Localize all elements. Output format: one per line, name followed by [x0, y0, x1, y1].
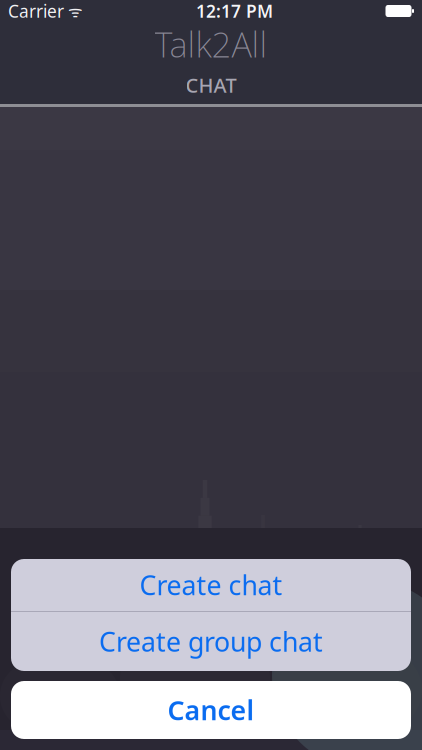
button[interactable]: Contacts [0, 705, 141, 728]
staticText: Create group chat [99, 624, 323, 659]
button[interactable]: Messages [141, 705, 281, 728]
staticText: Cancel [167, 692, 254, 728]
button[interactable]: Cancel [11, 681, 411, 739]
staticText: Create chat [139, 567, 282, 603]
staticText: Carrier [8, 0, 64, 22]
staticText: Talk2All [154, 21, 267, 67]
staticText: Messages [170, 705, 251, 728]
button[interactable]: Create group chat [11, 612, 411, 671]
staticText: ᯤ [64, 0, 83, 22]
button[interactable]: Create chat [11, 559, 411, 611]
staticText: 12:17 PM [196, 0, 273, 22]
button[interactable]: CHAT [0, 66, 422, 104]
button[interactable]: My Account [281, 705, 422, 728]
staticText: CHAT [185, 72, 236, 98]
